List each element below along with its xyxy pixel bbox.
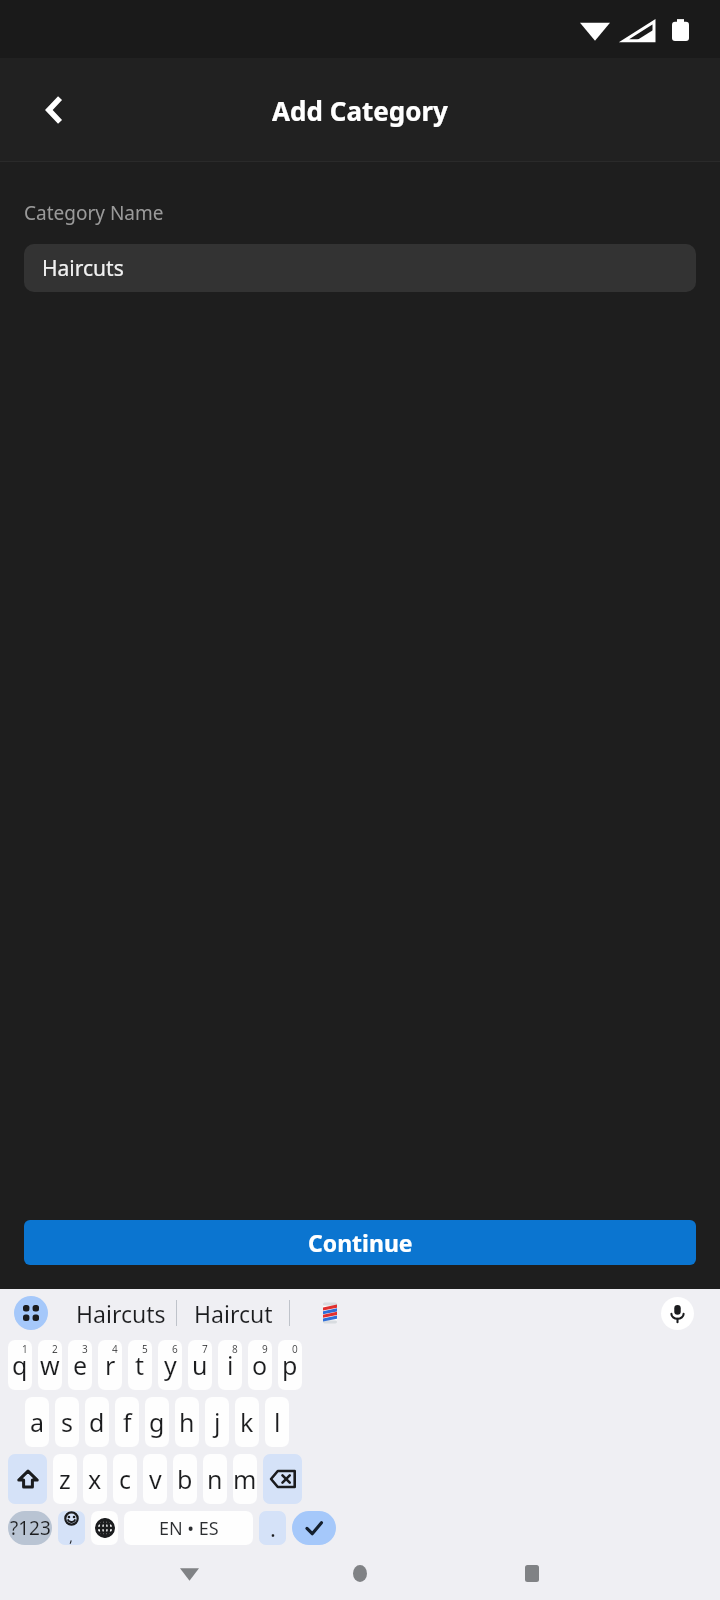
button[interactable]: k: [235, 1397, 259, 1447]
button[interactable]: e: [68, 1340, 92, 1390]
staticText: 3: [82, 1342, 88, 1356]
staticText: d: [89, 1405, 105, 1439]
staticText: ?123: [10, 1515, 51, 1541]
staticText: Category Name: [24, 200, 164, 226]
staticText: k: [240, 1405, 254, 1439]
staticText: v: [149, 1462, 162, 1496]
button[interactable]: n: [203, 1454, 227, 1504]
staticText: EN • ES: [159, 1516, 219, 1541]
button[interactable]: h: [175, 1397, 199, 1447]
button[interactable]: p: [278, 1340, 302, 1390]
button[interactable]: m: [233, 1454, 257, 1504]
button[interactable]: o: [248, 1340, 272, 1390]
button[interactable]: Haircuts: [66, 1289, 176, 1337]
button[interactable]: g: [145, 1397, 169, 1447]
button[interactable]: c: [113, 1454, 137, 1504]
staticText: 5: [142, 1342, 148, 1356]
button[interactable]: Continue: [24, 1220, 696, 1265]
staticText: w: [40, 1348, 60, 1382]
button[interactable]: Recents: [509, 1550, 555, 1596]
staticText: Add Category: [272, 93, 448, 128]
button[interactable]: y: [158, 1340, 182, 1390]
button[interactable]: Backspace: [263, 1454, 302, 1504]
button[interactable]: z: [53, 1454, 77, 1504]
button[interactable]: Shift: [8, 1454, 47, 1504]
staticText: Haircuts: [42, 254, 124, 283]
staticText: j: [214, 1405, 221, 1439]
staticText: n: [207, 1462, 223, 1496]
button[interactable]: i: [218, 1340, 242, 1390]
staticText: 1: [22, 1342, 28, 1356]
staticText: x: [88, 1462, 102, 1496]
staticText: p: [282, 1348, 298, 1382]
staticText: f: [123, 1405, 132, 1439]
staticText: z: [59, 1462, 71, 1496]
button[interactable]: EN • ES: [124, 1511, 253, 1545]
staticText: a: [30, 1405, 45, 1439]
staticText: 7: [202, 1342, 208, 1356]
button[interactable]: x: [83, 1454, 107, 1504]
button[interactable]: r: [98, 1340, 122, 1390]
button[interactable]: v: [143, 1454, 167, 1504]
button[interactable]: t: [128, 1340, 152, 1390]
staticText: 9: [262, 1342, 268, 1356]
button[interactable]: Toolbar: [14, 1296, 48, 1330]
button[interactable]: d: [85, 1397, 109, 1447]
button[interactable]: Enter: [292, 1511, 336, 1545]
button[interactable]: s: [55, 1397, 79, 1447]
staticText: m: [233, 1462, 257, 1496]
button[interactable]: u: [188, 1340, 212, 1390]
staticText: c: [119, 1462, 132, 1496]
button[interactable]: Haircut: [177, 1289, 289, 1337]
staticText: 6: [172, 1342, 178, 1356]
staticText: 8: [232, 1342, 238, 1356]
button[interactable]: f: [115, 1397, 139, 1447]
button[interactable]: Back: [166, 1550, 212, 1596]
staticText: 0: [292, 1342, 298, 1356]
staticText: g: [149, 1405, 165, 1439]
staticText: 4: [112, 1342, 118, 1356]
staticText: .: [270, 1513, 276, 1543]
staticText: i: [227, 1348, 234, 1382]
staticText: y: [164, 1348, 177, 1382]
staticText: ,: [69, 1526, 74, 1545]
staticText: 2: [52, 1342, 58, 1356]
button[interactable]: Haircuts: [24, 244, 696, 292]
staticText: b: [177, 1462, 193, 1496]
staticText: Haircuts: [76, 1298, 166, 1329]
staticText: o: [252, 1348, 268, 1382]
button[interactable]: Emoji: [58, 1511, 85, 1545]
staticText: s: [61, 1405, 73, 1439]
staticText: t: [135, 1348, 145, 1382]
staticText: h: [179, 1405, 195, 1439]
staticText: e: [73, 1348, 88, 1382]
button[interactable]: q: [8, 1340, 32, 1390]
staticText: Continue: [308, 1227, 413, 1258]
button[interactable]: a: [25, 1397, 49, 1447]
button[interactable]: .: [259, 1511, 286, 1545]
button[interactable]: ?123: [8, 1511, 52, 1545]
button[interactable]: Voice input: [661, 1297, 694, 1330]
staticText: Haircut: [194, 1298, 273, 1329]
button[interactable]: Home: [337, 1550, 383, 1596]
button[interactable]: [290, 1289, 370, 1337]
button[interactable]: Back: [20, 76, 88, 144]
staticText: l: [274, 1405, 281, 1439]
staticText: q: [12, 1348, 28, 1382]
button[interactable]: Change language: [91, 1511, 118, 1545]
staticText: r: [105, 1348, 116, 1382]
staticText: u: [192, 1348, 208, 1382]
button[interactable]: l: [265, 1397, 289, 1447]
button[interactable]: w: [38, 1340, 62, 1390]
button[interactable]: b: [173, 1454, 197, 1504]
button[interactable]: j: [205, 1397, 229, 1447]
